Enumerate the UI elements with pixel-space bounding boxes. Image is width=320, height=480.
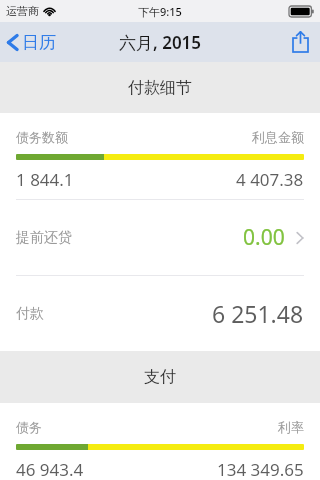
staticText: 付款细节: [128, 78, 192, 98]
staticText: 4 407.38: [236, 168, 304, 191]
staticText: 支付: [144, 367, 176, 387]
staticText: 六月, 2015: [119, 31, 202, 54]
button[interactable]: 提前还贷: [0, 200, 320, 275]
staticText: 134 349.65: [217, 458, 304, 480]
staticText: 日历: [22, 32, 56, 53]
staticText: 0.00: [243, 223, 285, 252]
staticText: 债务数额: [16, 129, 68, 145]
staticText: 付款: [16, 305, 44, 323]
staticText: 提前还贷: [16, 229, 72, 247]
staticText: 46 943.4: [16, 458, 84, 480]
staticText: 运营商: [6, 4, 39, 18]
staticText: 下午9:15: [138, 4, 182, 19]
staticText: 利率: [278, 419, 304, 435]
button[interactable]: Share: [281, 22, 320, 62]
button[interactable]: 日历: [0, 22, 68, 62]
staticText: 6 251.48: [212, 298, 304, 329]
staticText: 1 844.1: [16, 168, 74, 191]
staticText: 利息金额: [252, 129, 304, 145]
staticText: 债务: [16, 419, 42, 435]
